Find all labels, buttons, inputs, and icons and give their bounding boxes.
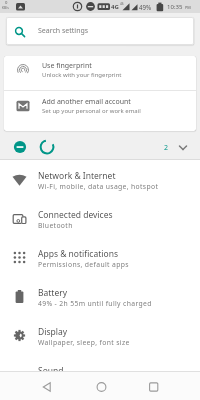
- staticText: Search settings: [38, 26, 89, 36]
- staticText: Connected devices: [38, 209, 113, 221]
- staticText: 49%: [139, 3, 152, 11]
- staticText: Wi-Fi, mobile, data usage, hotspot: [38, 182, 159, 191]
- button[interactable]: Connected devices: [0, 199, 200, 238]
- button[interactable]: 2: [0, 131, 200, 159]
- button[interactable]: Network & Internet: [0, 160, 200, 199]
- staticText: Permissions, default apps: [38, 260, 129, 269]
- staticText: Apps & notifications: [38, 248, 118, 260]
- button[interactable]: [133, 372, 200, 400]
- staticText: Unlock with your fingerprint: [42, 71, 122, 79]
- staticText: 0: [5, 0, 8, 6]
- button[interactable]: Battery: [0, 277, 200, 316]
- button[interactable]: [0, 372, 66, 400]
- staticText: Display: [38, 326, 67, 338]
- staticText: Add another email account: [42, 97, 131, 107]
- button[interactable]: Display: [0, 316, 200, 355]
- button[interactable]: Add another email account: [4, 91, 196, 131]
- staticText: Set up your personal or work email: [42, 107, 141, 115]
- staticText: Use fingerprint: [42, 61, 92, 71]
- staticText: Network & Internet: [38, 170, 116, 182]
- staticText: Wallpaper, sleep, font size: [38, 338, 130, 347]
- staticText: 2: [164, 143, 169, 153]
- button[interactable]: Use fingerprint: [4, 56, 196, 90]
- staticText: PM: [185, 5, 191, 10]
- staticText: Battery: [38, 287, 68, 299]
- staticText: 49% - 2h 55m until fully charged: [38, 299, 152, 308]
- button[interactable]: Apps & notifications: [0, 238, 200, 277]
- staticText: KB/s: [2, 6, 9, 10]
- staticText: 46: [120, 2, 124, 6]
- staticText: Volume, vibration, Do Not Disturb: [38, 377, 158, 386]
- staticText: Bluetooth: [38, 221, 73, 230]
- staticText: Sound: [38, 365, 64, 377]
- staticText: 10:35: [167, 3, 183, 11]
- staticText: 4G: [111, 3, 119, 11]
- button[interactable]: Search settings: [6, 17, 194, 45]
- button[interactable]: [66, 372, 133, 400]
- button[interactable]: Sound: [0, 355, 200, 394]
